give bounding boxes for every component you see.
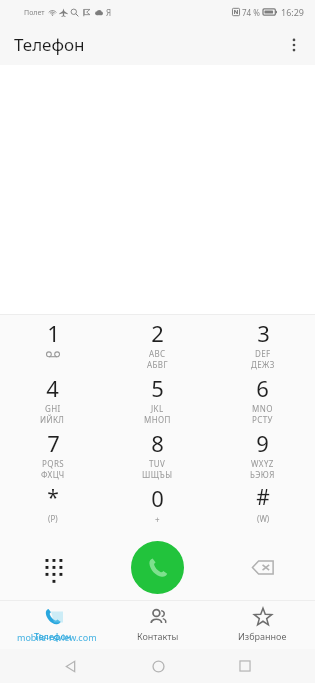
staticText: ЬЭЮЯ xyxy=(250,469,275,480)
staticText: DEF xyxy=(255,348,271,359)
button[interactable]: Backspace xyxy=(210,535,315,600)
button[interactable]: 0 xyxy=(105,480,210,535)
staticText: Телефон xyxy=(14,33,85,56)
staticText: (P) xyxy=(48,513,58,524)
button[interactable]: Home xyxy=(141,649,175,683)
staticText: ДЕЖЗ xyxy=(251,359,275,370)
staticText: Телефон xyxy=(34,630,72,642)
button[interactable]: # xyxy=(210,480,315,535)
staticText: 1 xyxy=(47,318,60,348)
staticText: 74 % xyxy=(242,7,260,18)
button[interactable]: 9 xyxy=(210,425,315,480)
staticText: GHI xyxy=(45,403,61,414)
button[interactable]: 8 xyxy=(105,425,210,480)
staticText: ФХЦЧ xyxy=(41,469,65,480)
button[interactable]: * xyxy=(0,480,105,535)
staticText: ИЙКЛ xyxy=(40,414,65,425)
staticText: Я xyxy=(106,7,112,18)
staticText: PQRS xyxy=(42,458,65,469)
staticText: JKL xyxy=(151,403,164,414)
staticText: ШЩЪЫ xyxy=(142,469,173,480)
staticText: Избранное xyxy=(238,630,287,642)
staticText: 0 xyxy=(151,483,164,513)
staticText: * xyxy=(47,483,59,512)
staticText: MNO xyxy=(252,403,273,414)
button[interactable]: Call xyxy=(131,541,184,594)
button[interactable]: Back xyxy=(53,649,87,683)
button[interactable]: 7 xyxy=(0,425,105,480)
staticText: 8 xyxy=(151,428,164,458)
staticText: РСТУ xyxy=(252,414,273,425)
staticText: АБВГ xyxy=(147,359,168,370)
staticText: 5 xyxy=(151,373,164,403)
staticText: + xyxy=(155,514,160,525)
staticText: Полет xyxy=(24,8,45,18)
staticText: mobile-review.com xyxy=(17,631,97,643)
staticText: WXYZ xyxy=(251,458,274,469)
button[interactable]: 3 xyxy=(210,315,315,370)
staticText: Контакты xyxy=(137,630,179,642)
staticText: 3 xyxy=(257,318,270,348)
button[interactable]: Избранное xyxy=(210,600,315,649)
staticText: 4 xyxy=(46,373,59,403)
staticText: # xyxy=(256,483,270,512)
button[interactable]: Контакты xyxy=(105,600,210,649)
button[interactable]: 1 xyxy=(0,315,105,370)
staticText: 6 xyxy=(256,373,269,403)
button[interactable]: 4 xyxy=(0,370,105,425)
staticText: TUV xyxy=(149,458,166,469)
staticText: 7 xyxy=(47,428,60,458)
button[interactable]: 2 xyxy=(105,315,210,370)
staticText: 16:29 xyxy=(281,6,305,18)
button[interactable]: 5 xyxy=(105,370,210,425)
staticText: ABC xyxy=(149,348,166,359)
button[interactable]: 6 xyxy=(210,370,315,425)
staticText: 2 xyxy=(151,318,164,348)
staticText: (W) xyxy=(257,513,270,524)
staticText: 9 xyxy=(256,428,269,458)
button[interactable]: Keypad xyxy=(0,535,105,600)
button[interactable]: Телефон xyxy=(0,600,105,649)
button[interactable]: Recents xyxy=(228,649,262,683)
staticText: МНОП xyxy=(144,414,171,425)
button[interactable]: More options xyxy=(277,28,311,62)
